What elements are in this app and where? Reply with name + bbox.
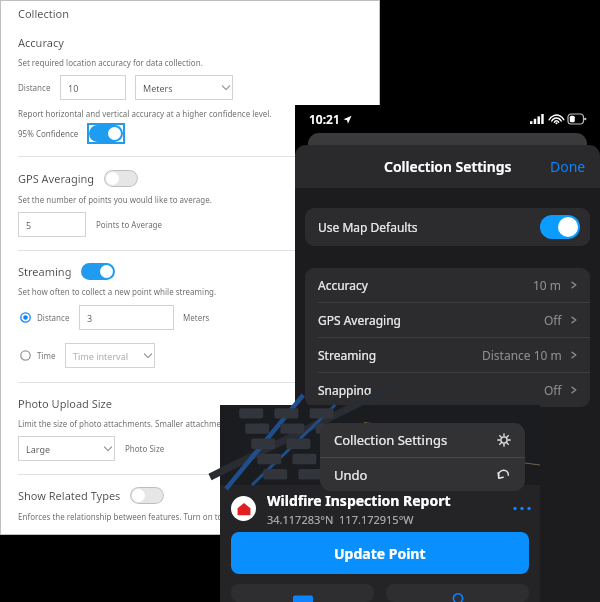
button[interactable]: [104, 170, 138, 187]
button[interactable]: 3: [79, 305, 174, 330]
button[interactable]: Large: [18, 436, 115, 461]
staticText: GPS Averaging: [18, 171, 95, 186]
staticText: GPS Averaging: [318, 312, 401, 328]
button[interactable]: 10: [60, 75, 126, 100]
staticText: Wildfire Inspection Report: [267, 491, 451, 510]
staticText: Set the number of points you would like …: [18, 194, 212, 205]
staticText: Large: [26, 443, 51, 455]
staticText: Snapping: [318, 382, 372, 398]
button[interactable]: Done: [536, 147, 600, 186]
staticText: Meters: [183, 312, 210, 323]
button[interactable]: Accuracy: [305, 268, 590, 302]
staticText: Distance: [37, 312, 70, 323]
staticText: Collection Settings: [384, 157, 512, 176]
staticText: Set how often to collect a new point whi…: [18, 286, 217, 297]
staticText: Photo Size: [125, 443, 165, 454]
staticText: Off: [544, 312, 562, 328]
staticText: 10 m: [533, 277, 562, 293]
staticText: Limit the size of photo attachments. Sma…: [18, 418, 277, 429]
staticText: Collection Settings: [334, 431, 448, 449]
button[interactable]: Collection Settings: [320, 423, 525, 457]
staticText: Off: [544, 382, 562, 398]
staticText: Report horizontal and vertical accuracy …: [18, 108, 272, 119]
staticText: Use Map Defaults: [318, 219, 418, 235]
staticText: 10:21: [309, 111, 340, 127]
staticText: Collection: [18, 6, 70, 21]
button[interactable]: GPS Averaging: [305, 303, 590, 337]
button[interactable]: [89, 125, 123, 142]
staticText: 10: [68, 82, 79, 94]
staticText: Points to Average: [96, 219, 163, 230]
button[interactable]: Snapping: [305, 373, 590, 407]
staticText: Streaming: [18, 264, 72, 279]
staticText: Photo Upload Size: [18, 396, 112, 411]
staticText: Done: [550, 157, 586, 176]
staticText: Accuracy: [18, 35, 64, 50]
button[interactable]: Undo: [320, 458, 525, 491]
button[interactable]: More options: [504, 497, 540, 520]
staticText: Meters: [143, 82, 173, 94]
staticText: 5: [26, 219, 32, 231]
staticText: Streaming: [318, 347, 377, 363]
button[interactable]: [130, 487, 164, 504]
staticText: Time: [37, 350, 56, 361]
button[interactable]: Streaming: [305, 338, 590, 372]
button[interactable]: Use Map Defaults: [305, 208, 590, 246]
staticText: Accuracy: [318, 277, 368, 293]
button[interactable]: Time interval: [65, 343, 155, 368]
staticText: Enforces the relationship between featur…: [18, 511, 245, 522]
button[interactable]: Wildfire Inspection Report: [231, 485, 540, 532]
button[interactable]: [81, 263, 115, 280]
staticText: 95% Confidence: [18, 128, 79, 139]
staticText: Show Related Types: [18, 488, 121, 503]
button[interactable]: [231, 584, 374, 602]
button[interactable]: Update Point: [231, 532, 529, 574]
staticText: Time interval: [73, 350, 129, 362]
staticText: 34.117283°N 117.172915°W: [267, 512, 414, 527]
button[interactable]: 5: [18, 212, 86, 237]
staticText: Distance 10 m: [482, 347, 562, 363]
staticText: Set required location accuracy for data …: [18, 57, 203, 68]
staticText: Update Point: [334, 544, 426, 563]
staticText: Undo: [334, 466, 368, 484]
button[interactable]: [386, 584, 529, 602]
button[interactable]: Meters: [135, 75, 233, 100]
staticText: Distance: [18, 82, 51, 93]
staticText: 3: [87, 312, 93, 324]
